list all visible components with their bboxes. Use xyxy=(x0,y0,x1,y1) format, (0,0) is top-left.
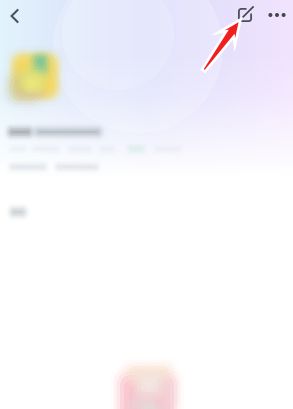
button[interactable]: Back xyxy=(4,3,26,29)
button[interactable]: More xyxy=(261,0,293,30)
button[interactable]: Compose xyxy=(231,1,259,29)
